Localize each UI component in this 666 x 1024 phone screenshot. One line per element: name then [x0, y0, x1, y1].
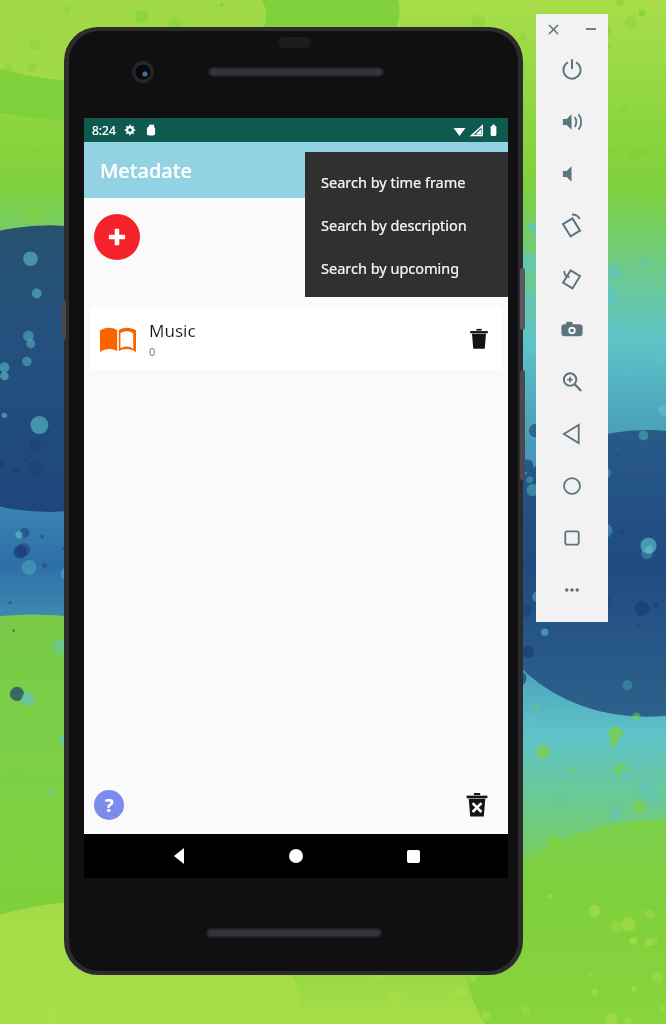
staticText: Metadate — [100, 157, 192, 184]
staticText: Search by upcoming — [321, 258, 460, 278]
button[interactable]: Music — [90, 308, 502, 370]
button[interactable]: Volume down — [546, 148, 598, 200]
button[interactable]: Delete — [456, 316, 502, 362]
staticText: 8:24 — [92, 122, 116, 138]
staticText: ? — [105, 793, 114, 818]
staticText: Music — [149, 319, 196, 342]
button[interactable]: Close — [542, 18, 564, 40]
button[interactable]: Back — [159, 835, 201, 877]
button[interactable]: More — [546, 564, 598, 616]
button[interactable]: Delete all — [456, 784, 498, 826]
button[interactable]: Overview — [546, 512, 598, 564]
button[interactable]: Power — [546, 44, 598, 96]
button[interactable]: Metadate — [84, 142, 508, 198]
button[interactable]: Screenshot — [546, 304, 598, 356]
staticText: 0 — [149, 344, 156, 359]
staticText: Search by time frame — [321, 172, 466, 192]
button[interactable]: Zoom — [546, 356, 598, 408]
button[interactable]: Search by description — [305, 203, 508, 246]
button[interactable]: Rotate left — [546, 200, 598, 252]
button[interactable]: Search by time frame — [305, 160, 508, 203]
button[interactable]: Recents — [392, 835, 434, 877]
button[interactable]: Home — [546, 460, 598, 512]
staticText: Search by description — [321, 215, 467, 235]
button[interactable]: Rotate right — [546, 252, 598, 304]
button[interactable]: Add — [94, 214, 140, 260]
button[interactable]: Minimize — [580, 18, 602, 40]
button[interactable]: Volume up — [546, 96, 598, 148]
button[interactable]: Search by upcoming — [305, 246, 508, 289]
button[interactable]: Back — [546, 408, 598, 460]
button[interactable]: Help — [94, 790, 124, 820]
button[interactable]: Home — [275, 835, 317, 877]
